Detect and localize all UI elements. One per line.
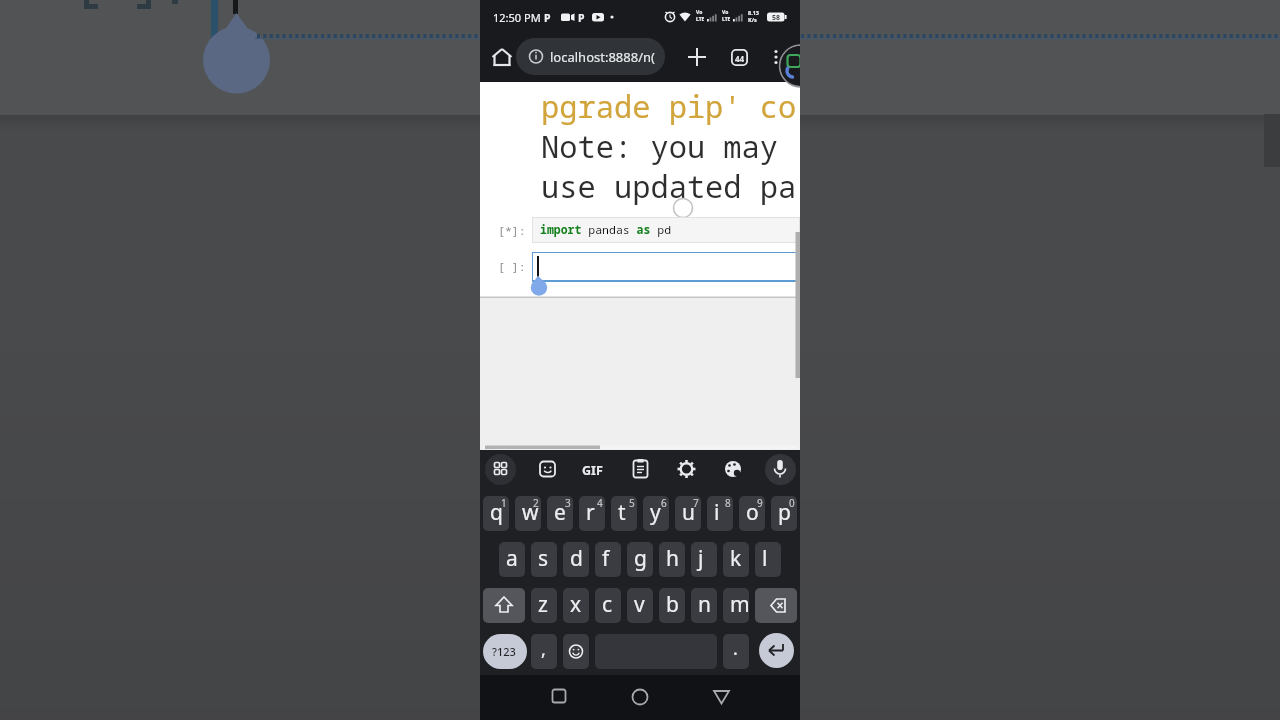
staticText: b	[666, 590, 679, 619]
button[interactable]: u	[675, 496, 701, 531]
staticText: v	[634, 590, 645, 619]
button[interactable]	[532, 252, 800, 282]
staticText: c	[602, 590, 613, 619]
staticText: 9	[757, 496, 763, 510]
button[interactable]: z	[531, 588, 557, 623]
staticText: o	[746, 498, 759, 527]
button[interactable]	[718, 454, 748, 485]
staticText: g	[634, 544, 647, 573]
staticText: a	[506, 544, 518, 573]
staticText: f	[602, 544, 610, 573]
button[interactable]	[686, 46, 708, 68]
staticText: import pandas as pd	[540, 222, 672, 238]
staticText: ?123	[492, 644, 516, 659]
button[interactable]: r	[579, 496, 605, 531]
button[interactable]	[625, 681, 655, 711]
staticText: localhost:8888/n(	[550, 48, 655, 66]
button[interactable]: x	[563, 588, 589, 623]
button[interactable]	[765, 454, 796, 485]
button[interactable]: f	[595, 542, 621, 577]
button[interactable]	[767, 45, 785, 70]
staticText: [ ]:	[498, 259, 526, 275]
staticText: 6	[661, 496, 667, 510]
staticText: 44	[735, 53, 745, 64]
staticText: q	[490, 498, 503, 527]
staticText: m	[730, 590, 749, 619]
staticText: 7	[693, 496, 699, 510]
staticText: Vo LTE	[696, 9, 705, 23]
button[interactable]: l	[755, 542, 781, 577]
button[interactable]: y	[643, 496, 669, 531]
staticText: ,	[541, 637, 546, 662]
button[interactable]: e	[547, 496, 573, 531]
staticText: x	[570, 590, 582, 619]
staticText: h	[666, 544, 679, 573]
staticText: 0	[789, 496, 795, 510]
staticText: k	[730, 544, 742, 573]
staticText: 5	[629, 496, 635, 510]
button[interactable]: o	[739, 496, 765, 531]
button[interactable]	[755, 588, 797, 623]
staticText: l	[762, 544, 768, 573]
button[interactable]: b	[659, 588, 685, 623]
staticText: u	[682, 498, 695, 527]
button[interactable]	[485, 454, 516, 485]
button[interactable]: g	[627, 542, 653, 577]
button[interactable]	[671, 454, 701, 485]
staticText: Vo LTE	[722, 9, 731, 23]
button[interactable]: i	[707, 496, 733, 531]
button[interactable]: m	[723, 588, 749, 623]
button[interactable]: a	[499, 542, 525, 577]
staticText: 12:50 PM	[493, 10, 541, 25]
staticText: P	[544, 11, 551, 25]
staticText: 1	[501, 496, 507, 510]
staticText: P	[578, 11, 585, 25]
staticText: pgrade pip' co	[541, 86, 797, 127]
button[interactable]	[532, 454, 562, 485]
staticText: 58	[772, 13, 781, 23]
button[interactable]	[544, 681, 574, 711]
staticText: use updated pa	[541, 166, 797, 207]
staticText: z	[538, 590, 548, 619]
staticText: Note: you may	[541, 126, 779, 167]
button[interactable]: ?123	[483, 634, 527, 669]
button[interactable]: k	[723, 542, 749, 577]
button[interactable]: 44	[731, 49, 748, 66]
staticText: t	[618, 498, 626, 527]
staticText: GIF	[582, 462, 603, 479]
staticText: w	[522, 498, 539, 527]
button[interactable]	[483, 588, 525, 623]
staticText: 8.13 K/s	[748, 9, 759, 23]
button[interactable]	[563, 634, 589, 669]
button[interactable]: d	[563, 542, 589, 577]
staticText: 3	[565, 496, 571, 510]
staticText: 4	[597, 496, 603, 510]
staticText: 2	[533, 496, 539, 510]
button[interactable]: w	[515, 496, 541, 531]
staticText: n	[698, 590, 711, 619]
button[interactable]: localhost:8888/n(	[516, 38, 665, 75]
staticText: j	[698, 544, 704, 573]
button[interactable]: .	[723, 634, 749, 669]
button[interactable]	[490, 45, 514, 71]
button[interactable]: q	[483, 496, 509, 531]
button[interactable]: s	[531, 542, 557, 577]
button[interactable]: p	[771, 496, 797, 531]
button[interactable]: v	[627, 588, 653, 623]
staticText: [*]:	[498, 223, 526, 239]
button[interactable]	[706, 681, 736, 711]
button[interactable]	[532, 217, 800, 243]
button[interactable]: t	[611, 496, 637, 531]
staticText: 8	[725, 496, 731, 510]
button[interactable]: n	[691, 588, 717, 623]
button[interactable]: c	[595, 588, 621, 623]
button[interactable]: ,	[531, 634, 557, 669]
button[interactable]	[759, 633, 794, 668]
staticText: s	[538, 544, 549, 573]
button[interactable]: j	[691, 542, 717, 577]
button[interactable]	[577, 454, 607, 485]
staticText: e	[554, 498, 566, 527]
button[interactable]: h	[659, 542, 685, 577]
button[interactable]	[625, 454, 655, 485]
